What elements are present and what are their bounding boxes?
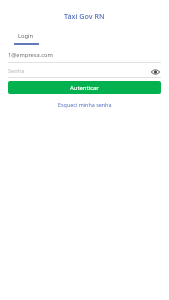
button[interactable]: Show password bbox=[149, 64, 161, 77]
staticText: Login bbox=[18, 32, 34, 40]
staticText: Autenticar bbox=[70, 84, 99, 92]
button[interactable]: Esqueci minha senha bbox=[54, 99, 116, 110]
button[interactable]: Login bbox=[8, 31, 44, 45]
staticText: Senha bbox=[8, 67, 149, 75]
staticText: Táxi Gov RN bbox=[64, 11, 105, 21]
staticText: Esqueci minha senha bbox=[58, 101, 112, 108]
button[interactable]: Senha bbox=[8, 63, 161, 77]
button[interactable]: Autenticar bbox=[8, 81, 161, 94]
staticText: 1@empresa.com bbox=[8, 51, 53, 59]
button[interactable]: 1@empresa.com bbox=[8, 48, 161, 62]
